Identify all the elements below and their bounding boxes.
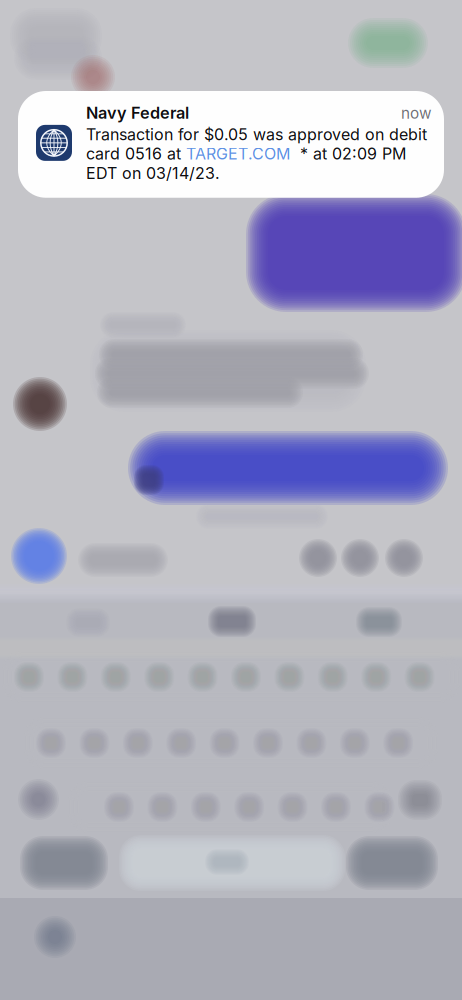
staticText: Navy Federal bbox=[86, 103, 189, 123]
staticText: Transaction for $0.05 was approved on de… bbox=[86, 125, 427, 183]
staticText: now bbox=[401, 104, 432, 122]
button[interactable]: Navy Federal bbox=[18, 91, 444, 198]
